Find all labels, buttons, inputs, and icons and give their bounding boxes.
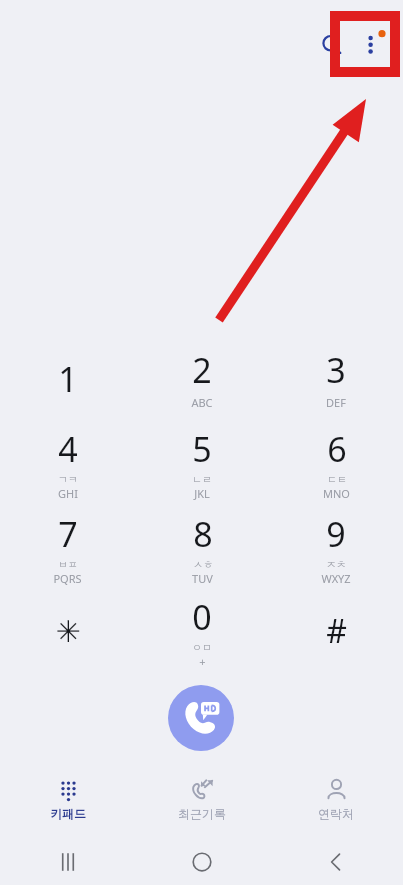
button[interactable]: 4 bbox=[0, 421, 135, 506]
staticText: ㄷㅌ bbox=[327, 473, 347, 486]
staticText: # bbox=[326, 609, 347, 653]
staticText: 9 bbox=[326, 511, 346, 557]
staticText: ㅇㅁ bbox=[192, 641, 212, 654]
staticText: WXYZ bbox=[321, 571, 351, 586]
staticText: PQRS bbox=[53, 571, 82, 586]
button[interactable]: Recent apps bbox=[0, 838, 135, 885]
button[interactable]: ✳ bbox=[0, 591, 135, 671]
staticText: 3 bbox=[326, 347, 346, 393]
button[interactable]: 최근기록 bbox=[135, 768, 269, 830]
staticText: 최근기록 bbox=[178, 806, 226, 821]
staticText: 0 bbox=[192, 594, 212, 640]
staticText: DEF bbox=[326, 395, 346, 410]
button[interactable]: 8 bbox=[135, 506, 269, 591]
button[interactable]: 3 bbox=[269, 336, 403, 421]
staticText: ✳ bbox=[55, 614, 81, 649]
button[interactable]: 0 bbox=[135, 591, 269, 671]
button[interactable]: More options bbox=[350, 20, 396, 66]
staticText: ㅅㅎ bbox=[193, 558, 213, 571]
staticText: 1 bbox=[58, 356, 78, 402]
staticText: 7 bbox=[58, 511, 78, 557]
staticText: 8 bbox=[193, 511, 213, 557]
staticText: TUV bbox=[192, 571, 213, 586]
staticText: 4 bbox=[58, 426, 78, 472]
staticText: 5 bbox=[192, 426, 212, 472]
button[interactable]: Back bbox=[269, 838, 403, 885]
button[interactable]: 연락처 bbox=[269, 768, 403, 830]
staticText: 연락처 bbox=[318, 806, 354, 821]
staticText: JKL bbox=[194, 486, 210, 501]
staticText: ㅂㅍ bbox=[58, 558, 78, 571]
button[interactable]: 2 bbox=[135, 336, 269, 421]
staticText: ㄴㄹ bbox=[192, 473, 212, 486]
button[interactable]: 1 bbox=[0, 336, 135, 421]
button[interactable]: 5 bbox=[135, 421, 269, 506]
button[interactable]: Search bbox=[308, 21, 356, 69]
staticText: ㄱㅋ bbox=[58, 473, 78, 486]
button[interactable]: 7 bbox=[0, 506, 135, 591]
button[interactable]: 키패드 bbox=[0, 768, 135, 830]
staticText: 키패드 bbox=[50, 806, 86, 821]
button[interactable]: 6 bbox=[269, 421, 403, 506]
staticText: ㅈㅊ bbox=[326, 558, 346, 571]
button[interactable]: Home bbox=[135, 838, 269, 885]
button[interactable]: 9 bbox=[269, 506, 403, 591]
staticText: ABC bbox=[191, 395, 213, 410]
staticText: + bbox=[199, 654, 206, 669]
staticText: MNO bbox=[323, 486, 350, 501]
staticText: GHI bbox=[58, 486, 78, 501]
button[interactable]: # bbox=[269, 591, 403, 671]
button[interactable]: Call bbox=[168, 685, 234, 751]
staticText: 6 bbox=[327, 426, 347, 472]
staticText: 2 bbox=[192, 347, 212, 393]
